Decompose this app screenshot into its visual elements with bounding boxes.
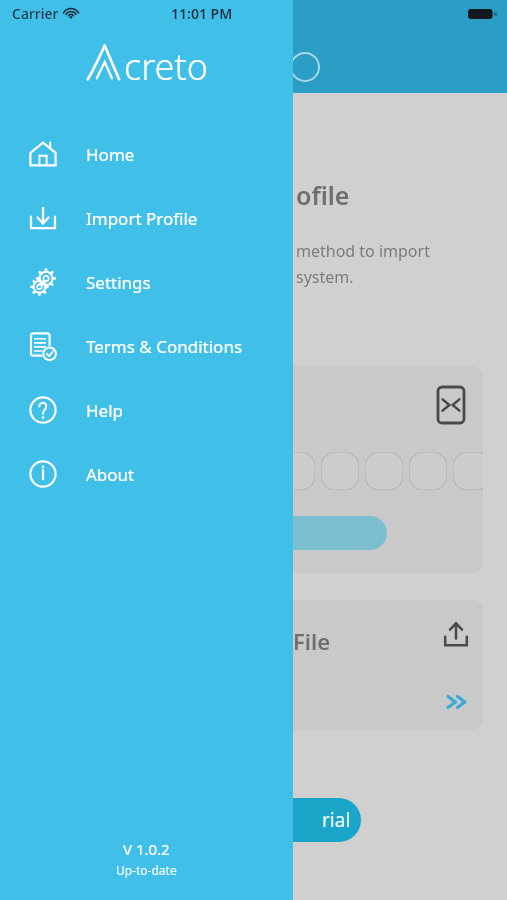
staticText: File (293, 626, 331, 656)
staticText: Import Profile (86, 207, 198, 230)
button[interactable] (277, 452, 315, 490)
button[interactable]: File (255, 600, 483, 730)
staticText: Help (86, 399, 124, 422)
button[interactable] (409, 452, 447, 490)
button[interactable]: Home (0, 122, 293, 186)
staticText: About (86, 463, 135, 486)
button[interactable] (453, 452, 483, 490)
button[interactable]: Scan QR code (437, 386, 465, 424)
staticText: Up-to-date (116, 862, 177, 878)
button[interactable]: Terms & Conditions (0, 314, 293, 378)
button[interactable]: Settings (0, 250, 293, 314)
staticText: Carrier (12, 4, 59, 23)
staticText: creto (124, 42, 208, 91)
staticText: ofile (296, 178, 350, 212)
staticText: Home (86, 143, 135, 166)
staticText: system. (296, 266, 354, 288)
button[interactable]: Scan QR code (255, 366, 483, 573)
staticText: Terms & Conditions (86, 335, 243, 358)
button[interactable] (321, 452, 359, 490)
button[interactable]: Import Profile (0, 186, 293, 250)
button[interactable]: About (0, 442, 293, 506)
button[interactable]: Help (0, 378, 293, 442)
staticText: Settings (86, 271, 151, 294)
staticText: method to import (296, 240, 430, 262)
button[interactable]: Next (445, 692, 471, 712)
button[interactable] (277, 516, 387, 550)
button[interactable]: rial (228, 798, 361, 842)
button[interactable] (365, 452, 403, 490)
staticText: rial (322, 807, 351, 833)
staticText: 11:01 PM (171, 4, 233, 23)
button[interactable]: Upload file (441, 620, 471, 650)
staticText: V 1.0.2 (123, 839, 170, 859)
